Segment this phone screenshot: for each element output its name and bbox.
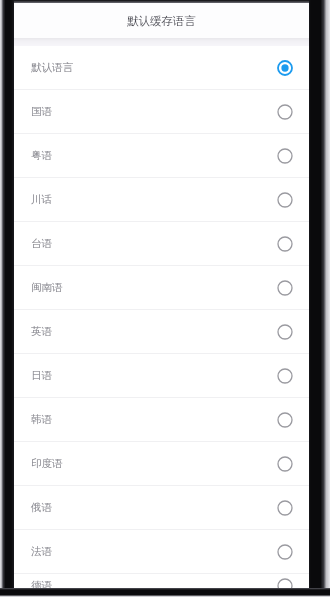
other: 法语 (275, 542, 295, 562)
other: 英语 (275, 322, 295, 342)
other: 韩语 (275, 410, 295, 430)
button[interactable]: 粤语 (14, 134, 309, 177)
other: 闽南语 (275, 278, 295, 298)
staticText: 闽南语 (31, 281, 63, 294)
staticText: 英语 (31, 325, 52, 338)
staticText: 法语 (31, 545, 52, 558)
staticText: 德语 (31, 579, 52, 592)
other: 俄语 (275, 498, 295, 518)
staticText: 粤语 (31, 149, 52, 162)
button[interactable]: 韩语 (14, 398, 309, 441)
button[interactable]: 印度语 (14, 442, 309, 485)
button[interactable]: 英语 (14, 310, 309, 353)
other: 台语 (275, 234, 295, 254)
staticText: 川话 (31, 193, 52, 206)
other: 粤语 (275, 146, 295, 166)
button[interactable]: 法语 (14, 530, 309, 573)
button[interactable]: 闽南语 (14, 266, 309, 309)
button[interactable]: 俄语 (14, 486, 309, 529)
staticText: 印度语 (31, 457, 63, 470)
other: 默认语言 selected (275, 58, 295, 78)
other: 印度语 (275, 454, 295, 474)
staticText: 韩语 (31, 413, 52, 426)
button[interactable]: 国语 (14, 90, 309, 133)
staticText: 俄语 (31, 501, 52, 514)
button[interactable]: 德语 (14, 574, 309, 597)
staticText: 日语 (31, 369, 52, 382)
staticText: 国语 (31, 105, 52, 118)
other: 国语 (275, 102, 295, 122)
button[interactable]: 川话 (14, 178, 309, 221)
button[interactable]: 日语 (14, 354, 309, 397)
other: 日语 (275, 366, 295, 386)
button[interactable]: 台语 (14, 222, 309, 265)
button[interactable]: 默认语言 (14, 46, 309, 89)
staticText: 默认缓存语言 (127, 14, 196, 28)
other: 川话 (275, 190, 295, 210)
staticText: 台语 (31, 237, 52, 250)
staticText: 默认语言 (31, 61, 73, 74)
other: 德语 (275, 576, 295, 596)
